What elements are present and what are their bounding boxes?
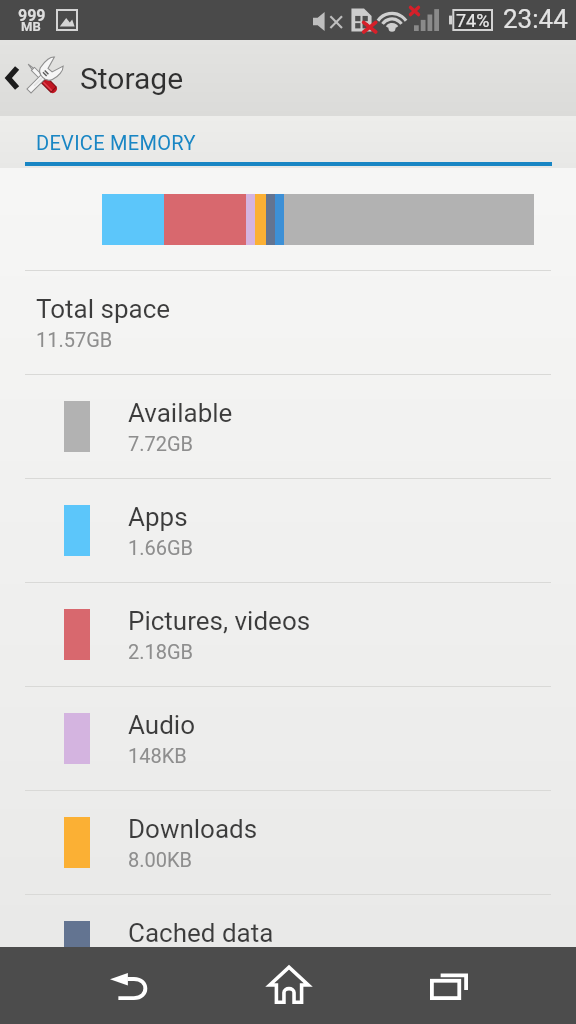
staticText: 999 bbox=[18, 6, 46, 25]
button[interactable]: Available bbox=[0, 375, 576, 478]
staticText: 8.00KB bbox=[128, 848, 193, 871]
staticText: 74% bbox=[456, 10, 490, 31]
staticText: DEVICE MEMORY bbox=[36, 131, 196, 154]
button[interactable]: DEVICE MEMORY bbox=[0, 116, 576, 168]
button[interactable]: Pictures, videos bbox=[0, 583, 576, 686]
staticText: Apps bbox=[128, 502, 188, 532]
staticText: 148KB bbox=[128, 744, 187, 767]
button[interactable]: Recent apps bbox=[388, 947, 509, 1024]
button[interactable]: Downloads bbox=[0, 791, 576, 894]
staticText: 23:44 bbox=[503, 4, 568, 34]
button[interactable]: Home bbox=[228, 947, 349, 1024]
staticText: Cached data bbox=[128, 918, 274, 948]
staticText: Available bbox=[128, 398, 233, 428]
button[interactable]: Cached data bbox=[0, 895, 576, 998]
button[interactable]: Audio bbox=[0, 687, 576, 790]
staticText: Total space bbox=[36, 294, 171, 324]
button[interactable]: Total space bbox=[0, 271, 576, 374]
button[interactable]: Storage bbox=[0, 40, 576, 116]
staticText: 11.57GB bbox=[36, 328, 113, 351]
staticText: Storage bbox=[80, 61, 184, 96]
staticText: 2.18GB bbox=[128, 640, 194, 663]
button[interactable]: Apps bbox=[0, 479, 576, 582]
staticText: 1.66GB bbox=[128, 536, 194, 559]
button[interactable]: Back bbox=[68, 947, 189, 1024]
staticText: Audio bbox=[128, 710, 195, 740]
staticText: Downloads bbox=[128, 814, 258, 844]
staticText: 7.72GB bbox=[128, 432, 194, 455]
staticText: MB bbox=[21, 19, 41, 34]
staticText: Pictures, videos bbox=[128, 606, 311, 636]
